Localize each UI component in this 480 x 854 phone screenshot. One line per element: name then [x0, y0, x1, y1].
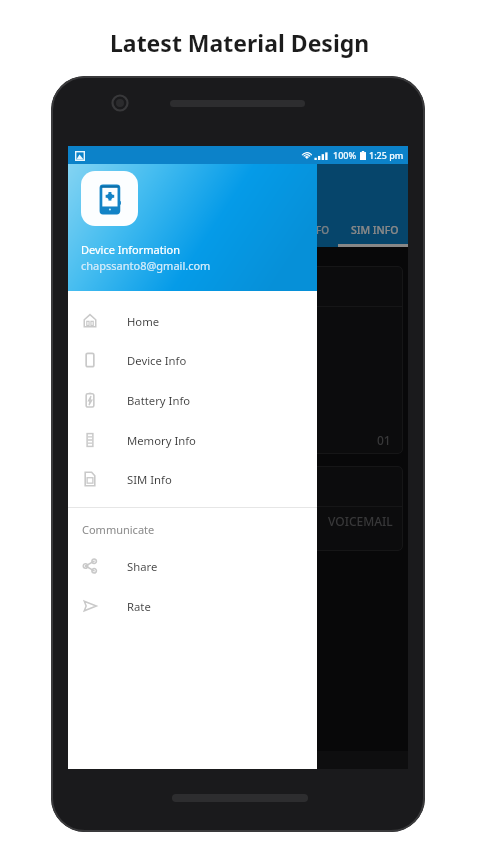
button[interactable]: Home — [68, 301, 317, 341]
staticText: FO — [316, 223, 330, 237]
staticText: Share — [127, 559, 158, 574]
staticText: Home — [127, 314, 160, 329]
staticText: chapssanto8@gmail.com — [81, 258, 211, 273]
staticText: 01 — [377, 432, 391, 448]
staticText: 100% — [333, 149, 357, 161]
button[interactable]: Battery Info — [68, 380, 317, 420]
staticText: Rate — [127, 599, 151, 614]
staticText: 1:25 pm — [369, 149, 404, 161]
staticText: VOICEMAIL — [328, 513, 393, 529]
button[interactable]: Device Information app icon — [81, 171, 138, 226]
button[interactable]: 01 — [73, 266, 403, 454]
staticText: SIM Info — [127, 472, 172, 487]
staticText: SIM INFO — [351, 223, 399, 237]
staticText: Device Information — [81, 242, 181, 257]
button[interactable]: SIM Info — [68, 459, 317, 499]
staticText: Battery Info — [127, 393, 191, 408]
staticText: Memory Info — [127, 433, 196, 448]
button[interactable]: Share — [68, 546, 317, 586]
staticText: Communicate — [82, 522, 155, 537]
button[interactable]: FO — [268, 212, 338, 247]
staticText: Device Info — [127, 353, 187, 368]
button[interactable]: VOICEMAIL — [73, 466, 403, 551]
staticText: Latest Material Design — [110, 27, 370, 58]
button[interactable]: SIM INFO — [340, 212, 410, 247]
button[interactable]: Device Info — [68, 340, 317, 380]
button[interactable]: Memory Info — [68, 420, 317, 460]
button[interactable]: Rate — [68, 586, 317, 626]
